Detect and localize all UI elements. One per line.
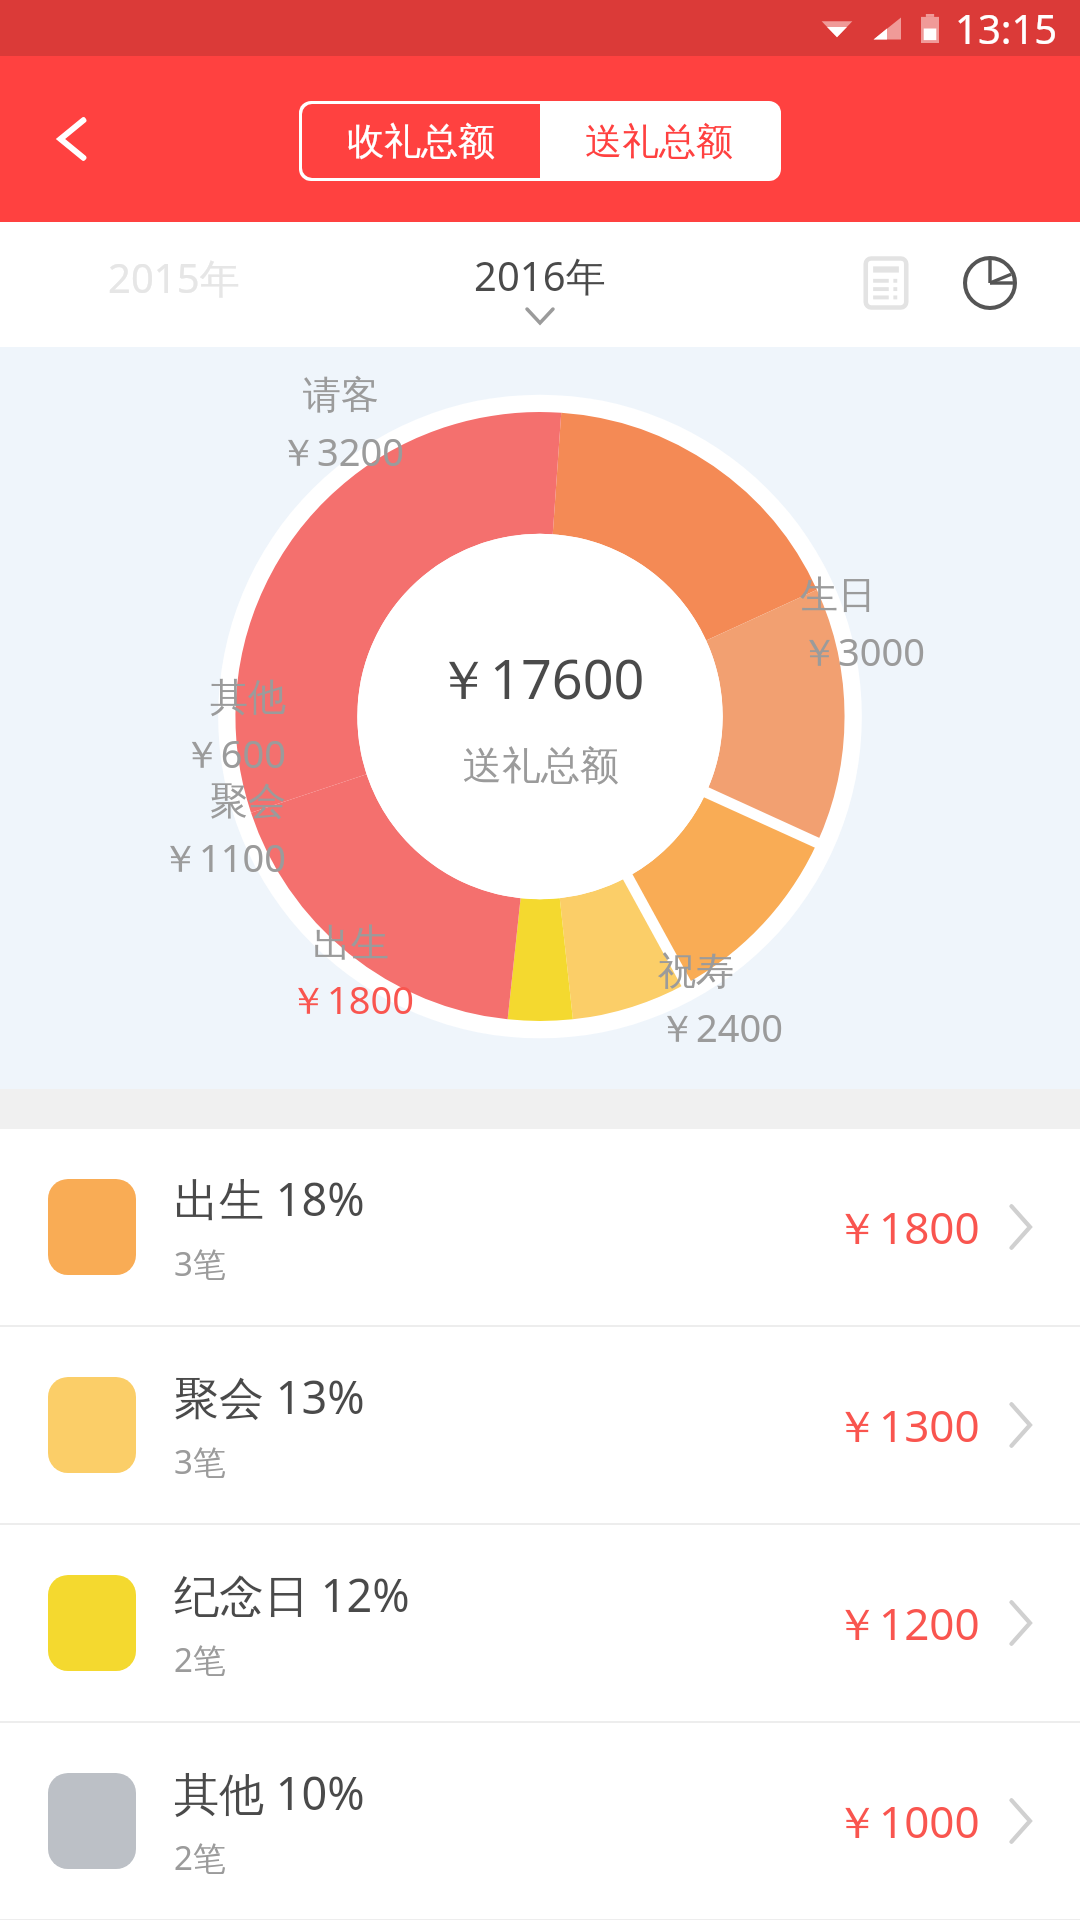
staticText: ￥600: [182, 727, 286, 779]
staticText: 13:15: [955, 1, 1058, 55]
button[interactable]: Back: [34, 100, 112, 178]
staticText: 3笔: [174, 1241, 226, 1286]
button[interactable]: 送礼总额: [540, 104, 778, 178]
staticText: 送礼总额: [463, 741, 619, 790]
staticText: 纪念日 12%: [174, 1564, 410, 1625]
staticText: 出生 18%: [174, 1168, 365, 1229]
staticText: 2笔: [174, 1637, 226, 1682]
button[interactable]: Chart view: [952, 245, 1028, 321]
staticText: ￥1100: [161, 831, 286, 883]
staticText: ￥1300: [835, 1395, 980, 1455]
staticText: ￥1200: [835, 1593, 980, 1653]
staticText: ￥3200: [279, 425, 404, 477]
button[interactable]: 其他 10%: [0, 1723, 1080, 1919]
staticText: ￥2400: [658, 1001, 783, 1053]
staticText: ￥1800: [835, 1197, 980, 1257]
staticText: 收礼总额: [347, 118, 495, 165]
button[interactable]: List view: [850, 247, 922, 319]
button[interactable]: 聚会 13%: [0, 1327, 1080, 1523]
button[interactable]: 2015年: [108, 250, 240, 305]
staticText: 2笔: [174, 1835, 226, 1880]
button[interactable]: 出生 18%: [0, 1129, 1080, 1325]
staticText: ￥17600: [436, 641, 645, 715]
staticText: 2016年: [474, 248, 606, 303]
staticText: 聚会: [210, 777, 286, 825]
button[interactable]: 2016年: [474, 248, 606, 323]
staticText: 祝寿: [658, 947, 734, 995]
staticText: 生日: [800, 571, 876, 619]
staticText: ￥3000: [800, 625, 925, 677]
staticText: 出生: [313, 919, 389, 967]
staticText: 其他 10%: [174, 1762, 365, 1823]
staticText: ￥1800: [289, 973, 414, 1025]
button[interactable]: 收礼总额: [302, 104, 540, 178]
staticText: ￥1000: [835, 1791, 980, 1851]
staticText: 送礼总额: [585, 118, 733, 165]
button[interactable]: 纪念日 12%: [0, 1525, 1080, 1721]
staticText: 请客: [303, 371, 379, 419]
staticText: 聚会 13%: [174, 1366, 365, 1427]
staticText: 其他: [210, 673, 286, 721]
staticText: 3笔: [174, 1439, 226, 1484]
